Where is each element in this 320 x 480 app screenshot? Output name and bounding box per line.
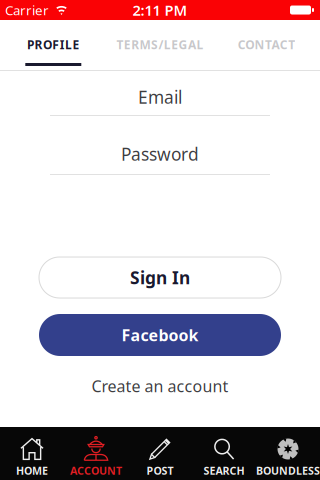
button[interactable]: TERMS/LEGAL: [107, 20, 213, 69]
staticText: HOME: [16, 463, 48, 478]
button[interactable]: BOUNDLESS: [256, 427, 320, 480]
staticText: CONTACT: [238, 36, 295, 52]
staticText: Password: [121, 142, 199, 165]
staticText: ACCOUNT: [70, 463, 122, 478]
button[interactable]: PROFILE: [0, 20, 107, 69]
staticText: SEARCH: [203, 463, 244, 478]
staticText: PROFILE: [27, 36, 79, 52]
staticText: TERMS/LEGAL: [116, 36, 203, 52]
staticText: Facebook: [121, 324, 198, 346]
button[interactable]: Create an account: [91, 375, 228, 397]
staticText: BOUNDLESS: [256, 463, 320, 478]
button[interactable]: HOME: [0, 427, 64, 480]
staticText: Create an account: [91, 375, 228, 397]
staticText: POST: [146, 463, 173, 478]
staticText: Carrier: [5, 1, 49, 19]
button[interactable]: Sign In: [39, 257, 281, 298]
button[interactable]: Password: [50, 135, 270, 173]
staticText: Sign In: [130, 266, 190, 289]
button[interactable]: SEARCH: [192, 427, 256, 480]
button[interactable]: ACCOUNT: [64, 427, 128, 480]
button[interactable]: Facebook: [39, 314, 281, 356]
button[interactable]: CONTACT: [213, 20, 320, 69]
button[interactable]: Email: [50, 78, 270, 116]
staticText: Email: [138, 85, 182, 108]
staticText: 2:11 PM: [132, 0, 187, 20]
button[interactable]: POST: [128, 427, 192, 480]
